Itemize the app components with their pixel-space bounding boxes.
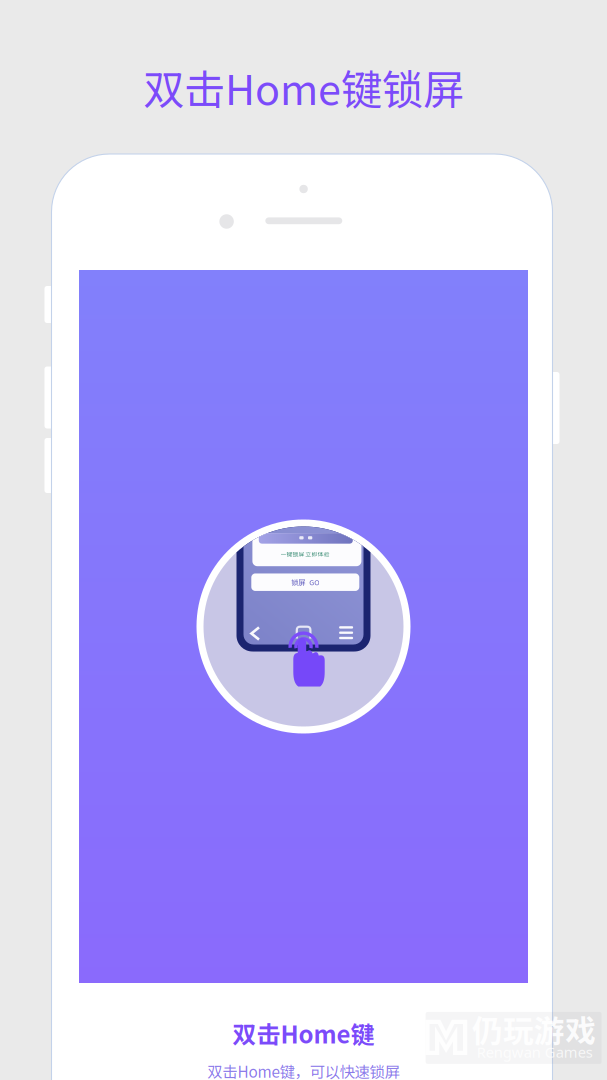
staticText: 双击Home键锁屏 [143, 57, 464, 117]
staticText: 锁屏 GO [291, 577, 319, 587]
staticText: 双击Home键 [232, 1016, 374, 1050]
staticText: 双击Home键，可以快速锁屏 [207, 1060, 399, 1080]
staticText: Rengwan Games [477, 1042, 593, 1062]
staticText: 仍玩游戏 [472, 1007, 596, 1051]
staticText: 一键锁屏 立即体验 [280, 550, 329, 558]
